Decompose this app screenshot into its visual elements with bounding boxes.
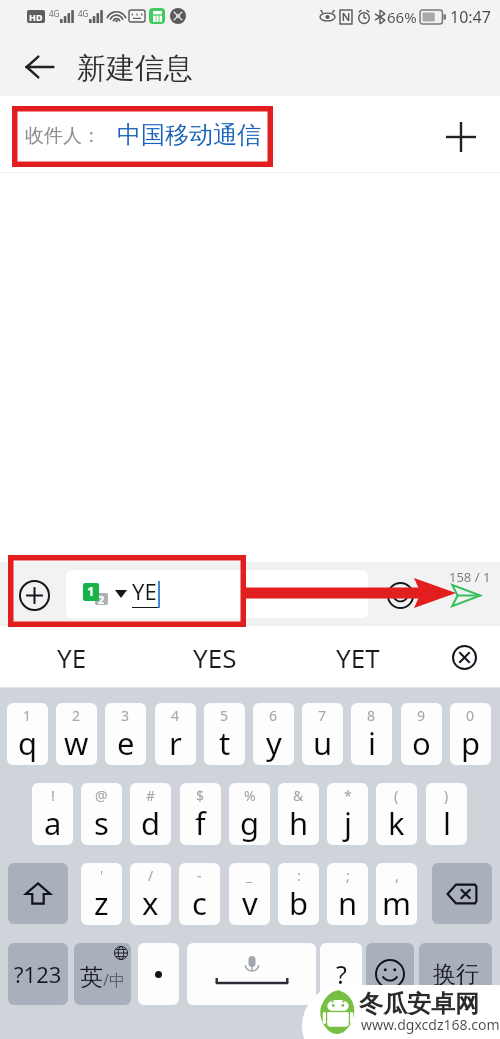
staticText: 0 <box>466 706 475 725</box>
staticText: ; <box>346 866 350 885</box>
staticText: * <box>344 786 352 805</box>
button[interactable]: YET <box>300 629 416 685</box>
staticText: b <box>289 882 309 924</box>
staticText: p <box>461 722 481 764</box>
staticText: 4 <box>171 706 180 725</box>
staticText: x <box>142 882 159 924</box>
staticText: 9 <box>417 706 426 725</box>
staticText: : <box>297 866 301 885</box>
staticText: d <box>141 802 161 844</box>
button[interactable]: ) <box>426 783 467 845</box>
button[interactable]: # <box>130 783 171 845</box>
staticText: $ <box>196 786 205 805</box>
staticText: @ <box>95 786 108 805</box>
staticText: f <box>195 802 206 844</box>
button[interactable]: @ <box>81 783 122 845</box>
button[interactable]: Space <box>187 943 316 1005</box>
staticText: ( <box>394 786 399 805</box>
staticText: YET <box>336 640 380 675</box>
staticText: 5 <box>220 706 229 725</box>
button[interactable]: 3 <box>105 703 146 765</box>
button[interactable]: New line <box>419 943 492 1005</box>
staticText: 4G <box>49 8 60 19</box>
button[interactable]: YES <box>157 629 273 685</box>
button[interactable]: Add attachment <box>12 573 56 617</box>
button[interactable]: - <box>179 863 220 925</box>
button[interactable]: / <box>130 863 171 925</box>
staticText: 2 <box>72 706 81 725</box>
button[interactable]: ' <box>81 863 122 925</box>
button[interactable]: % <box>229 783 270 845</box>
button[interactable]: Emoji <box>382 577 418 613</box>
button[interactable]: _ <box>229 863 270 925</box>
button[interactable]: 9 <box>401 703 442 765</box>
staticText: y <box>266 722 282 764</box>
button[interactable]: : <box>278 863 319 925</box>
button[interactable]: , <box>376 863 417 925</box>
button[interactable]: Back <box>14 42 64 92</box>
staticText: 2 <box>98 593 105 604</box>
button[interactable]: Add recipient <box>437 113 485 161</box>
staticText: , <box>395 866 399 885</box>
staticText: ' <box>100 866 104 885</box>
staticText: 4G <box>78 8 89 19</box>
staticText: i <box>368 722 376 764</box>
staticText: ?123 <box>14 959 62 989</box>
button[interactable]: 7 <box>302 703 343 765</box>
staticText: n <box>338 882 358 924</box>
staticText: 新建信息 <box>77 50 193 87</box>
staticText: j <box>344 802 352 844</box>
staticText: /中 <box>103 969 125 991</box>
button[interactable]: Backspace <box>432 863 492 924</box>
button[interactable]: Period <box>138 943 179 1005</box>
staticText: c <box>192 882 207 924</box>
button[interactable]: Shift <box>8 863 68 924</box>
staticText: k <box>388 802 405 844</box>
staticText: w <box>64 722 89 764</box>
button[interactable]: 2 <box>56 703 97 765</box>
button[interactable]: YE <box>14 629 130 685</box>
staticText: s <box>94 802 109 844</box>
staticText: YE <box>132 576 157 606</box>
button[interactable]: ( <box>376 783 417 845</box>
staticText: m <box>382 882 411 924</box>
button[interactable]: Switch language <box>74 943 131 1005</box>
staticText: u <box>313 722 333 764</box>
button[interactable]: Question mark <box>320 943 362 1005</box>
staticText: 7 <box>318 706 327 725</box>
button[interactable]: Emoji keyboard <box>366 943 414 1005</box>
staticText: l <box>443 802 451 844</box>
button[interactable]: * <box>327 783 368 845</box>
staticText: t <box>219 722 231 764</box>
button[interactable]: Dismiss suggestions <box>434 629 494 685</box>
staticText: q <box>18 722 38 764</box>
staticText: - <box>197 866 202 885</box>
staticText: z <box>94 882 109 924</box>
staticText: % <box>244 786 256 805</box>
button[interactable]: 0 <box>450 703 491 765</box>
staticText: ! <box>51 786 55 805</box>
button[interactable]: Send message <box>435 565 495 623</box>
button[interactable]: & <box>278 783 319 845</box>
button[interactable]: ! <box>32 783 73 845</box>
button[interactable]: $ <box>180 783 221 845</box>
button[interactable]: ; <box>327 863 368 925</box>
staticText: 冬瓜安卓网 <box>359 989 479 1019</box>
staticText: 英 <box>80 963 103 992</box>
staticText: 1 <box>23 706 32 725</box>
button[interactable]: Symbols <box>8 943 68 1005</box>
staticText: HD <box>29 11 43 23</box>
button[interactable]: 1 <box>7 703 48 765</box>
staticText: / <box>148 866 154 885</box>
button[interactable]: 5 <box>204 703 245 765</box>
staticText: e <box>117 722 135 764</box>
button[interactable]: 2 <box>66 570 368 618</box>
button[interactable]: 4 <box>155 703 196 765</box>
button[interactable]: 6 <box>253 703 294 765</box>
staticText: g <box>240 802 260 844</box>
staticText: a <box>44 802 62 844</box>
staticText: 8 <box>367 706 376 725</box>
staticText: ) <box>444 786 449 805</box>
staticText: 6 <box>269 706 278 725</box>
button[interactable]: 8 <box>351 703 392 765</box>
